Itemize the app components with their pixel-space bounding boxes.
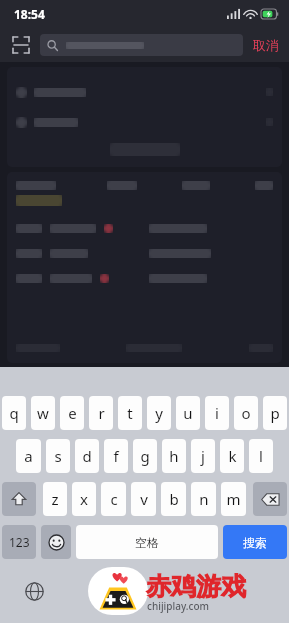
- staticText: r: [98, 403, 105, 423]
- staticText: 空格: [135, 535, 159, 550]
- button[interactable]: y: [147, 396, 171, 430]
- staticText: c: [110, 489, 118, 509]
- button[interactable]: o: [234, 396, 258, 430]
- button[interactable]: w: [31, 396, 55, 430]
- button[interactable]: a: [16, 439, 41, 473]
- button[interactable]: v: [131, 482, 156, 516]
- staticText: y: [155, 403, 163, 423]
- button[interactable]: q: [2, 396, 26, 430]
- staticText: j: [201, 446, 205, 466]
- button[interactable]: [7, 172, 282, 363]
- staticText: 取消: [253, 37, 279, 53]
- button[interactable]: Change keyboard: [22, 579, 46, 603]
- staticText: t: [127, 403, 133, 423]
- button[interactable]: m: [221, 482, 246, 516]
- staticText: a: [24, 446, 33, 466]
- button[interactable]: g: [133, 439, 157, 473]
- button[interactable]: r: [89, 396, 113, 430]
- button[interactable]: 123: [2, 525, 36, 559]
- staticText: chijiplay.com: [147, 599, 209, 613]
- button[interactable]: p: [263, 396, 287, 430]
- staticText: m: [226, 489, 241, 509]
- staticText: o: [241, 403, 251, 423]
- button[interactable]: 搜索: [223, 525, 287, 559]
- button[interactable]: i: [205, 396, 229, 430]
- staticText: e: [68, 403, 77, 423]
- staticText: 18:54: [14, 6, 45, 22]
- staticText: g: [140, 446, 150, 466]
- staticText: k: [228, 446, 237, 466]
- button[interactable]: k: [220, 439, 244, 473]
- button[interactable]: z: [43, 482, 67, 516]
- button[interactable]: h: [162, 439, 186, 473]
- staticText: n: [199, 489, 209, 509]
- button[interactable]: t: [118, 396, 142, 430]
- staticText: z: [51, 489, 59, 509]
- button[interactable]: u: [176, 396, 200, 430]
- button[interactable]: [40, 34, 243, 56]
- button[interactable]: f: [104, 439, 128, 473]
- button[interactable]: e: [60, 396, 84, 430]
- staticText: s: [54, 446, 62, 466]
- staticText: p: [270, 403, 280, 423]
- button[interactable]: b: [161, 482, 186, 516]
- staticText: w: [37, 403, 49, 423]
- button[interactable]: Emoji: [41, 525, 71, 559]
- staticText: q: [9, 403, 19, 423]
- button[interactable]: Backspace: [253, 482, 287, 516]
- button[interactable]: Scan: [8, 32, 34, 58]
- staticText: 赤鸡游戏: [146, 571, 246, 602]
- button[interactable]: x: [72, 482, 96, 516]
- staticText: b: [169, 489, 179, 509]
- button[interactable]: 取消: [251, 33, 281, 57]
- staticText: x: [80, 489, 88, 509]
- button[interactable]: 空格: [76, 525, 218, 559]
- button[interactable]: d: [75, 439, 99, 473]
- button[interactable]: [7, 67, 282, 167]
- staticText: 123: [9, 534, 30, 550]
- button[interactable]: n: [191, 482, 216, 516]
- staticText: u: [183, 403, 193, 423]
- staticText: i: [215, 403, 219, 423]
- staticText: h: [169, 446, 179, 466]
- staticText: d: [82, 446, 92, 466]
- button[interactable]: Shift: [2, 482, 36, 516]
- button[interactable]: s: [46, 439, 70, 473]
- button[interactable]: l: [249, 439, 273, 473]
- button[interactable]: c: [101, 482, 126, 516]
- staticText: f: [113, 446, 119, 466]
- staticText: 搜索: [243, 535, 267, 550]
- staticText: v: [140, 489, 148, 509]
- staticText: l: [259, 446, 263, 466]
- button[interactable]: j: [191, 439, 215, 473]
